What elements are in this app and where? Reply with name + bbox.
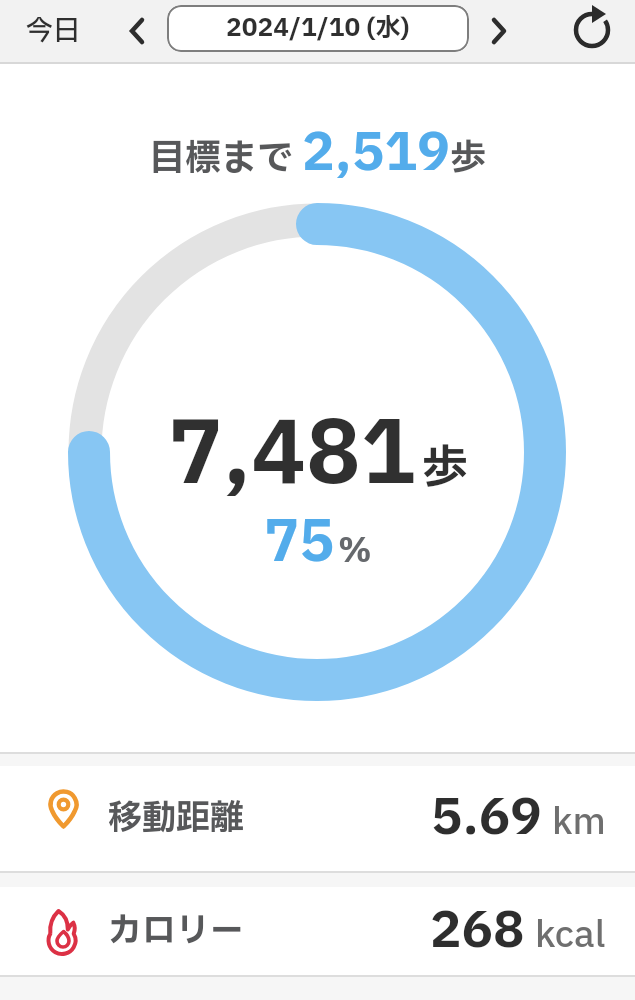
staticText: 歩: [450, 132, 487, 186]
staticText: 歩: [422, 434, 468, 503]
staticText: カロリー: [108, 906, 244, 957]
staticText: 2,519: [302, 115, 450, 179]
staticText: km: [552, 796, 606, 850]
staticText: 今日: [26, 11, 80, 51]
staticText: 7,481: [168, 391, 416, 501]
staticText: %: [338, 527, 372, 576]
button[interactable]: [477, 9, 521, 53]
staticText: 268: [430, 894, 525, 969]
button[interactable]: 今日: [18, 0, 88, 62]
button[interactable]: [566, 4, 618, 56]
staticText: 移動距離: [108, 793, 244, 844]
button[interactable]: 2024/1/10 (水): [167, 5, 469, 52]
staticText: 75: [264, 502, 335, 564]
staticText: 目標まで: [149, 132, 302, 186]
button[interactable]: 移動距離: [0, 766, 635, 871]
staticText: 5.69: [431, 781, 542, 856]
staticText: 2024/1/10 (水): [226, 10, 410, 47]
staticText: kcal: [535, 909, 606, 963]
button[interactable]: カロリー: [0, 887, 635, 975]
button[interactable]: [115, 9, 159, 53]
